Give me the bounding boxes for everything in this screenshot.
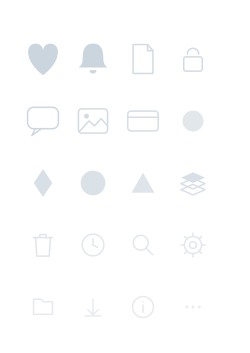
button[interactable]: Recents — [68, 214, 118, 276]
button[interactable]: Settings — [168, 214, 218, 276]
button[interactable]: Wallet — [118, 90, 168, 152]
button[interactable]: Play — [118, 152, 168, 214]
button[interactable]: Favorites — [18, 28, 68, 90]
button[interactable]: Photos — [68, 90, 118, 152]
button[interactable]: Download — [68, 276, 118, 338]
button[interactable]: Library — [168, 152, 218, 214]
button[interactable]: Info — [118, 276, 168, 338]
button[interactable]: Trash — [18, 214, 68, 276]
button[interactable]: Files — [18, 276, 68, 338]
button[interactable]: Shortcuts — [68, 152, 118, 214]
button[interactable]: Tags — [18, 152, 68, 214]
button[interactable]: Privacy — [168, 28, 218, 90]
button[interactable]: Search — [118, 214, 168, 276]
button[interactable]: Documents — [118, 28, 168, 90]
button[interactable]: Status — [168, 90, 218, 152]
button[interactable]: Messages — [18, 90, 68, 152]
button[interactable]: Alerts — [68, 28, 118, 90]
